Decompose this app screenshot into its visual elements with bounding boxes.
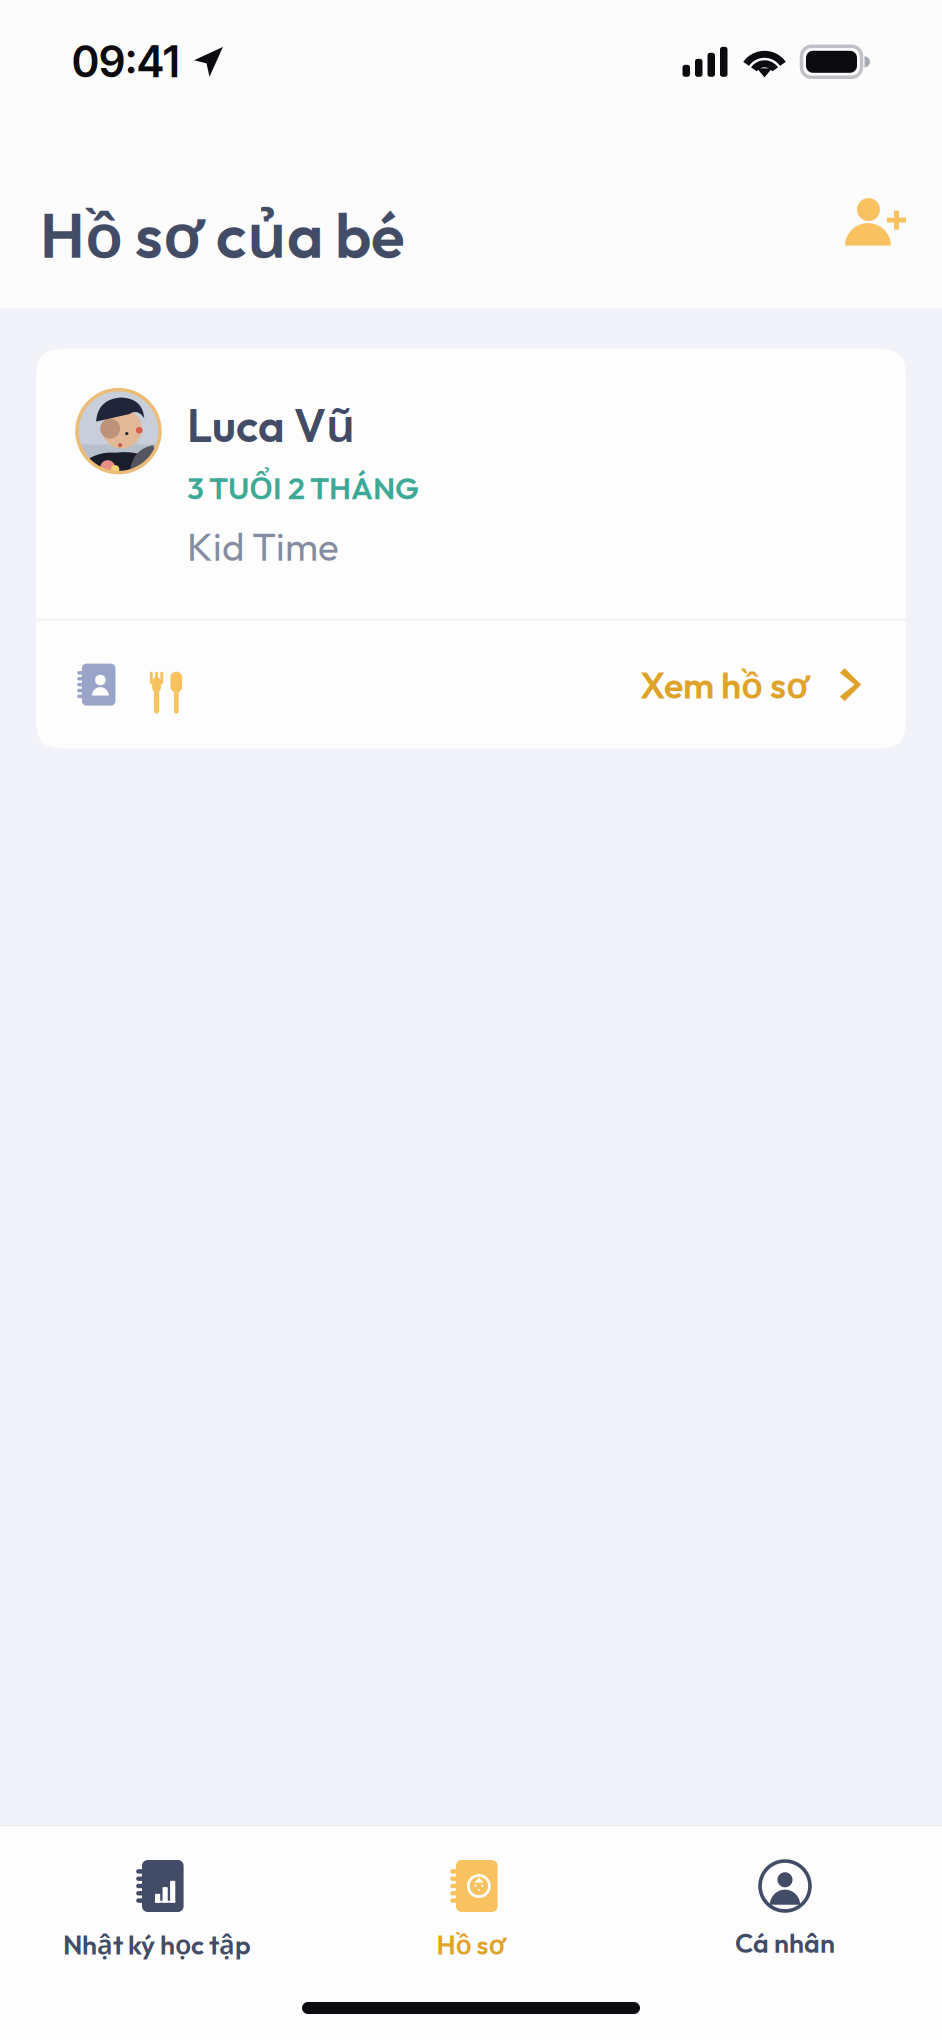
- button[interactable]: Nhật ký học tập: [0, 1826, 314, 1976]
- staticText: Kid Time: [187, 522, 339, 571]
- staticText: 09:41: [72, 36, 179, 88]
- staticText: Cá nhân: [735, 1926, 835, 1960]
- staticText: Luca Vũ: [187, 394, 355, 455]
- staticText: Nhật ký học tập: [63, 1926, 251, 1962]
- staticText: 3 TUỔI 2 THÁNG: [187, 466, 419, 508]
- button[interactable]: Sổ liên lạc: [57, 621, 131, 749]
- staticText: Hồ sơ của bé: [40, 191, 405, 276]
- staticText: Hồ sơ: [436, 1926, 505, 1962]
- staticText: Xem hồ sơ: [640, 660, 810, 709]
- button[interactable]: Xem hồ sơ: [640, 621, 863, 749]
- button[interactable]: Thực đơn: [131, 621, 201, 749]
- button[interactable]: Hồ sơ: [314, 1826, 628, 1976]
- button[interactable]: Thêm bé: [818, 186, 918, 282]
- button[interactable]: Cá nhân: [628, 1826, 942, 1976]
